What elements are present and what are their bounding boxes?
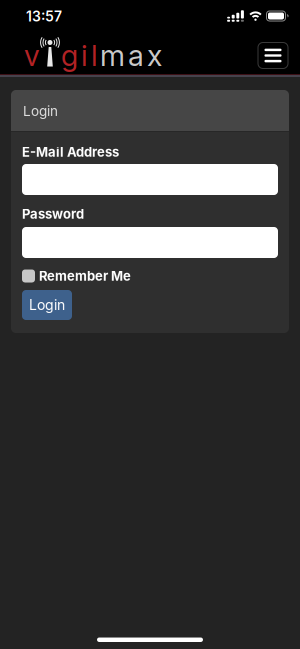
staticText: 13:57 <box>26 8 62 25</box>
staticText: max <box>100 38 162 73</box>
staticText: Login <box>23 103 58 119</box>
staticText: Remember Me <box>39 268 131 284</box>
button[interactable]: Login <box>22 290 72 320</box>
staticText: gil <box>61 38 98 73</box>
button[interactable]: E-Mail Address <box>22 164 278 195</box>
button[interactable]: Menu <box>258 42 288 68</box>
staticText: Login <box>29 296 65 313</box>
staticText: E-Mail Address <box>22 144 119 160</box>
button[interactable]: Remember Me <box>22 268 131 284</box>
staticText: Password <box>22 206 84 222</box>
staticText: v <box>24 38 40 73</box>
button[interactable]: Password <box>22 227 278 258</box>
